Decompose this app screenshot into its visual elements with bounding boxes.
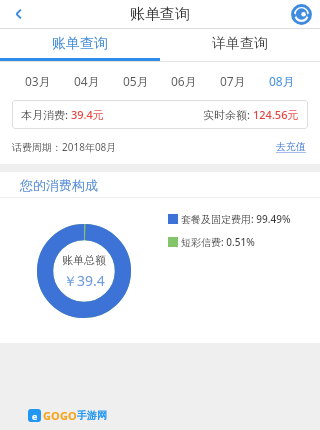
button[interactable]: 08月 [266,70,298,92]
button[interactable]: 06月 [168,70,200,92]
button[interactable]: 07月 [217,70,249,92]
staticText: 实时余额: [203,107,253,122]
staticText: 您的消费构成 [20,177,98,193]
staticText: 04月 [74,73,100,89]
staticText: 06月 [171,73,197,89]
staticText: GO [60,408,77,423]
button[interactable]: 详单查询 [160,29,320,58]
staticText: 本月消费: [21,107,71,122]
staticText: 详单查询 [212,35,268,53]
staticText: 手游网 [77,409,107,422]
staticText: 03月 [25,73,51,89]
button[interactable]: 04月 [71,70,103,92]
staticText: 短彩信费: 0.51% [181,235,255,249]
staticText: 账单总额 [62,253,106,267]
staticText: 话费周期：2018年08月 [12,140,117,154]
button[interactable]: Back [6,1,32,27]
staticText: 124.56元 [253,107,299,122]
button[interactable]: 05月 [120,70,152,92]
staticText: 08月 [269,73,295,89]
staticText: 07月 [220,73,246,89]
button[interactable]: 本月消费: [12,100,308,129]
staticText: 账单查询 [52,35,108,53]
staticText: e [32,410,38,422]
staticText: 账单查询 [130,5,190,24]
staticText: ￥39.4 [63,271,105,290]
button[interactable]: 03月 [22,70,54,92]
staticText: 去充值 [276,140,306,153]
staticText: 39.4元 [71,107,104,122]
staticText: 05月 [123,73,149,89]
button[interactable]: 去充值 [274,138,308,155]
button[interactable]: 账单查询 [0,29,160,58]
staticText: 套餐及固定费用: 99.49% [181,212,291,226]
staticText: GO [43,408,60,423]
button[interactable]: Customer service [289,2,313,26]
